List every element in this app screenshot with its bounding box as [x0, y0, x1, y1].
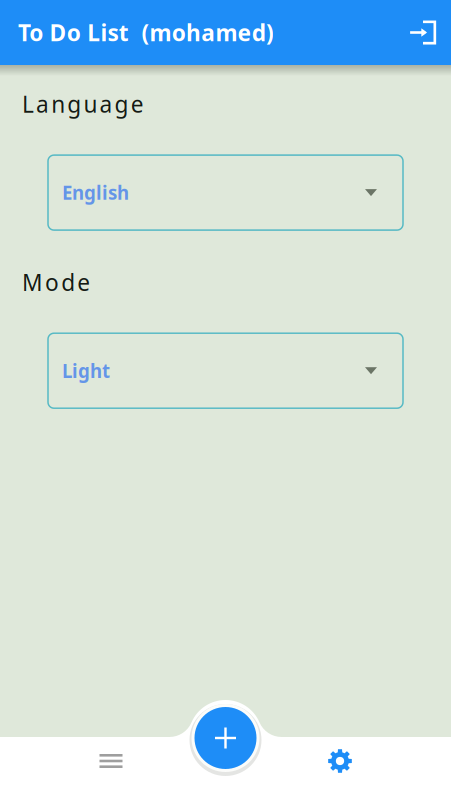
- staticText: Mode: [22, 267, 90, 297]
- staticText: English: [62, 180, 129, 205]
- button[interactable]: Menu: [74, 737, 148, 785]
- button[interactable]: English: [48, 155, 403, 230]
- staticText: Language: [22, 89, 144, 119]
- button[interactable]: Settings: [303, 737, 377, 785]
- button[interactable]: Light: [48, 333, 403, 408]
- button[interactable]: Sign out: [409, 20, 437, 44]
- staticText: Light: [62, 358, 110, 383]
- staticText: To Do List (mohamed): [18, 17, 274, 47]
- button[interactable]: Add task: [185, 698, 265, 778]
